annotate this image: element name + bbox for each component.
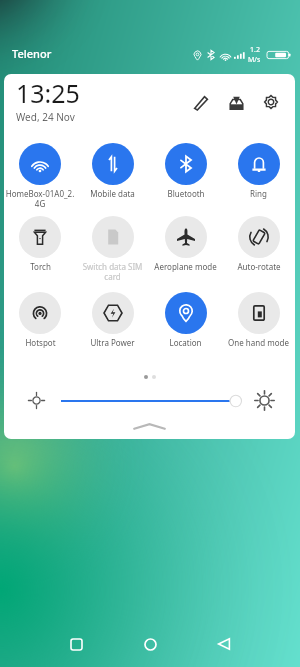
button[interactable]: Mobile data <box>76 140 149 213</box>
staticText: Torch <box>30 261 51 272</box>
button[interactable]: Torch <box>4 213 76 289</box>
staticText: Auto-rotate <box>237 261 281 272</box>
staticText: Hotspot <box>25 337 56 348</box>
staticText: Switch data SIM card <box>76 261 149 282</box>
button[interactable]: Aeroplane mode <box>149 213 222 289</box>
button[interactable]: Switch data SIM card <box>76 213 149 289</box>
button[interactable]: Edit <box>190 91 212 113</box>
button[interactable]: Home <box>130 624 170 664</box>
button[interactable]: Collapse <box>133 422 166 430</box>
staticText: Mobile data <box>90 188 135 199</box>
button[interactable]: Recents <box>56 624 96 664</box>
button[interactable]: Bluetooth <box>149 140 222 213</box>
staticText: Ring <box>250 188 267 199</box>
staticText: Telenor <box>12 46 52 61</box>
staticText: Bluetooth <box>167 188 205 199</box>
staticText: Wed, 24 Nov <box>16 110 75 124</box>
staticText: HomeBox-01A0_2.4G <box>4 188 76 209</box>
staticText: 1.2 <box>250 45 260 55</box>
staticText: One hand mode <box>228 337 289 348</box>
button[interactable]: Ultra Power <box>76 289 149 353</box>
button[interactable]: Settings <box>260 91 282 113</box>
button[interactable]: Inbox <box>225 91 247 113</box>
staticText: Location <box>169 337 202 348</box>
button[interactable]: One hand mode <box>222 289 295 353</box>
staticText: M/s <box>248 55 261 65</box>
button[interactable]: Ring <box>222 140 295 213</box>
button[interactable]: Auto-rotate <box>222 213 295 289</box>
staticText: Ultra Power <box>90 337 135 348</box>
button[interactable]: Location <box>149 289 222 353</box>
staticText: 13:25 <box>16 76 80 110</box>
button[interactable]: Hotspot <box>4 289 76 353</box>
button[interactable]: Back <box>204 624 244 664</box>
button[interactable]: HomeBox-01A0_2.4G <box>4 140 76 213</box>
staticText: Aeroplane mode <box>154 261 217 272</box>
